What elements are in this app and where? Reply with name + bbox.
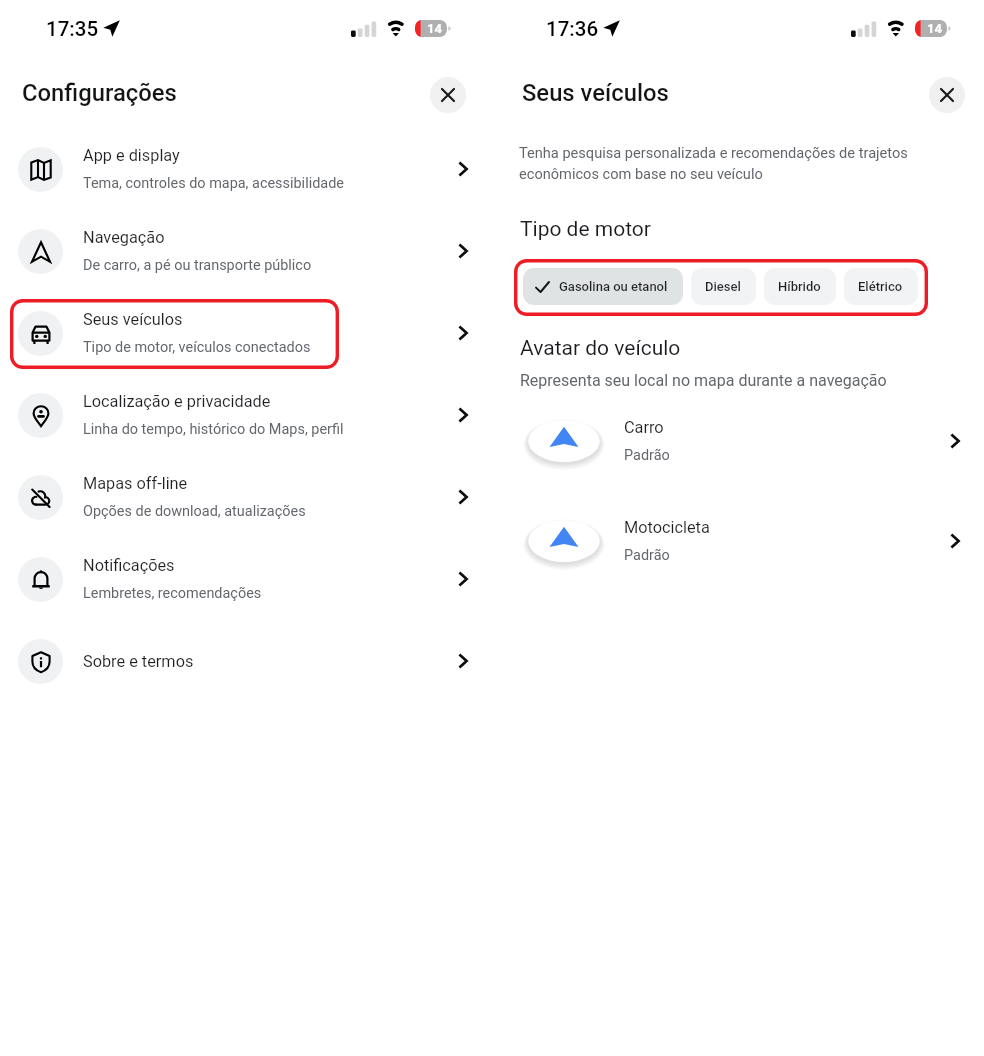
staticText: Tema, controles do mapa, acessibilidade	[83, 175, 344, 192]
staticText: Gasolina ou etanol	[559, 279, 668, 294]
staticText: Linha do tempo, histórico do Maps, perfi…	[83, 421, 344, 438]
staticText: 17:35	[46, 17, 99, 41]
button[interactable]: Híbrido	[764, 268, 836, 305]
staticText: Mapas off-line	[83, 474, 188, 493]
button[interactable]: Motocicleta	[500, 505, 984, 577]
staticText: Elétrico	[858, 279, 903, 294]
staticText: 14	[922, 21, 947, 37]
staticText: Opções de download, atualizações	[83, 503, 306, 520]
staticText: Seus veículos	[83, 310, 183, 329]
staticText: Padrão	[624, 447, 670, 464]
staticText: Híbrido	[778, 279, 821, 294]
button[interactable]: Seus veículos	[0, 292, 492, 374]
staticText: Tenha pesquisa personalizada e recomenda…	[519, 144, 915, 183]
staticText: 17:36	[546, 17, 599, 41]
button[interactable]: Sobre e termos	[0, 620, 492, 702]
button[interactable]: Elétrico	[844, 268, 918, 305]
staticText: Representa seu local no mapa durante a n…	[520, 371, 887, 390]
staticText: Diesel	[705, 279, 741, 294]
staticText: Seus veículos	[522, 79, 669, 107]
button[interactable]: Fechar	[430, 77, 466, 113]
staticText: App e display	[83, 146, 180, 165]
staticText: Notificações	[83, 556, 175, 575]
button[interactable]: Notificações	[0, 538, 492, 620]
button[interactable]: Carro	[500, 405, 984, 477]
staticText: 14	[422, 21, 447, 37]
staticText: Motocicleta	[624, 518, 710, 537]
button[interactable]: Fechar	[929, 77, 965, 113]
staticText: Localização e privacidade	[83, 392, 271, 411]
staticText: Configurações	[22, 79, 177, 107]
button[interactable]: Diesel	[691, 268, 756, 305]
staticText: Padrão	[624, 547, 670, 564]
button[interactable]: Localização e privacidade	[0, 374, 492, 456]
staticText: Sobre e termos	[83, 652, 194, 671]
staticText: Tipo de motor, veículos conectados	[83, 339, 311, 356]
button[interactable]: App e display	[0, 128, 492, 210]
staticText: De carro, a pé ou transporte público	[83, 257, 312, 274]
staticText: Avatar do veículo	[520, 336, 681, 361]
button[interactable]: Gasolina ou etanol	[523, 268, 683, 305]
button[interactable]: Navegação	[0, 210, 492, 292]
staticText: Navegação	[83, 228, 165, 247]
button[interactable]: Mapas off-line	[0, 456, 492, 538]
staticText: Tipo de motor	[520, 217, 651, 242]
staticText: Carro	[624, 418, 664, 437]
staticText: Lembretes, recomendações	[83, 585, 262, 602]
